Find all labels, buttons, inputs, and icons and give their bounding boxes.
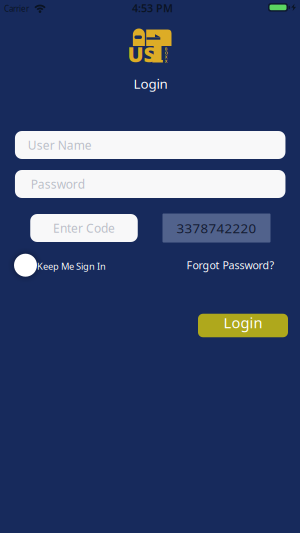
button[interactable]: Login <box>198 314 288 337</box>
staticText: Keep Me Sign In <box>37 260 106 272</box>
staticText: User Name <box>28 137 92 153</box>
staticText: Password <box>31 176 85 192</box>
button[interactable]: User Name <box>15 131 285 159</box>
button[interactable]: Forgot Password? <box>186 258 274 272</box>
staticText: B <box>165 46 168 51</box>
staticText: X <box>165 54 168 60</box>
button[interactable]: Keep Me Sign In <box>14 252 124 278</box>
staticText: 3378742220 <box>176 219 256 237</box>
staticText: Carrier <box>4 3 29 14</box>
staticText: Forgot Password? <box>186 258 274 272</box>
staticText: US <box>128 40 156 68</box>
staticText: X <box>165 58 168 64</box>
staticText: Enter Code <box>53 220 115 236</box>
button[interactable]: Enter Code <box>30 214 138 242</box>
staticText: Login <box>223 313 262 332</box>
button[interactable]: Password <box>15 170 285 198</box>
staticText: O <box>165 50 168 56</box>
staticText: 4:53 PM <box>132 1 173 15</box>
staticText: Login <box>133 75 167 92</box>
